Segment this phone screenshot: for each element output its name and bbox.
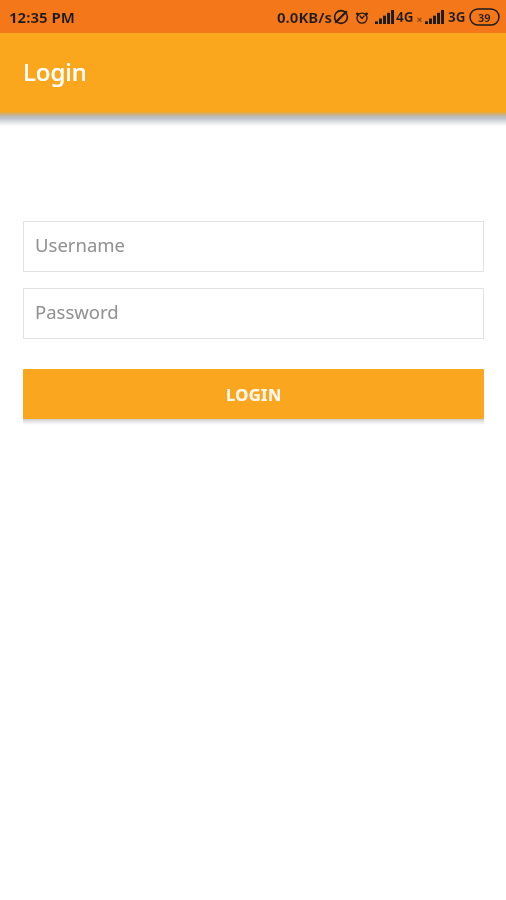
staticText: 4G — [396, 8, 414, 26]
staticText: Password — [35, 299, 119, 324]
other: Do not disturb — [333, 9, 349, 25]
staticText: LOGIN — [226, 383, 282, 405]
staticText: Login — [23, 55, 87, 88]
staticText: Username — [35, 232, 126, 257]
staticText: 0.0KB/s — [277, 7, 333, 27]
other: Alarm set — [355, 10, 369, 24]
button[interactable]: Username — [23, 221, 484, 272]
other: Signal strength — [375, 10, 394, 24]
staticText: 3G — [448, 8, 466, 26]
staticText: 39 — [478, 10, 491, 25]
staticText: 12:35 PM — [9, 7, 75, 27]
button[interactable]: LOGIN — [23, 369, 484, 419]
other: Signal strength — [425, 10, 444, 24]
button[interactable]: Password — [23, 288, 484, 339]
